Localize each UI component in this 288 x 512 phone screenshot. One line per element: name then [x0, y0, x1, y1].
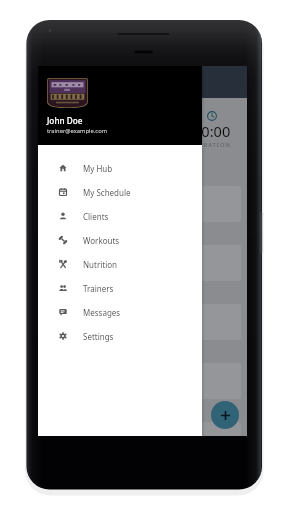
button[interactable]: [44, 422, 241, 436]
button[interactable]: [44, 186, 241, 222]
button[interactable]: Trainers: [38, 276, 202, 300]
button[interactable]: [44, 304, 241, 340]
staticText: My Schedule: [83, 187, 131, 198]
staticText: John Doe: [47, 115, 83, 126]
button[interactable]: [44, 245, 241, 281]
staticText: Workouts: [83, 235, 120, 246]
button[interactable]: [44, 363, 241, 399]
button[interactable]: 0000: [107, 98, 177, 152]
button[interactable]: Add: [211, 401, 239, 429]
button[interactable]: Nutrition: [38, 252, 202, 276]
staticText: My Hub: [83, 163, 113, 174]
button[interactable]: Messages: [38, 300, 202, 324]
staticText: DURATION: [193, 141, 231, 149]
button[interactable]: Settings: [38, 324, 202, 348]
button[interactable]: 00:00: [38, 98, 107, 152]
staticText: 00:00: [54, 121, 92, 141]
staticText: Clients: [83, 211, 109, 222]
button[interactable]: My Hub: [38, 156, 202, 180]
button[interactable]: Workouts: [38, 228, 202, 252]
staticText: Settings: [83, 331, 114, 342]
staticText: Messages: [83, 307, 121, 318]
staticText: CALORIES: [125, 141, 160, 149]
staticText: trainer@example.com: [47, 127, 108, 135]
staticText: 00:00: [193, 121, 231, 141]
button[interactable]: My Schedule: [38, 180, 202, 204]
button[interactable]: Clients: [38, 204, 202, 228]
button[interactable]: 00:00: [177, 98, 247, 152]
staticText: Nutrition: [83, 259, 118, 270]
staticText: Trainers: [83, 283, 114, 294]
staticText: DURATION: [54, 141, 92, 149]
